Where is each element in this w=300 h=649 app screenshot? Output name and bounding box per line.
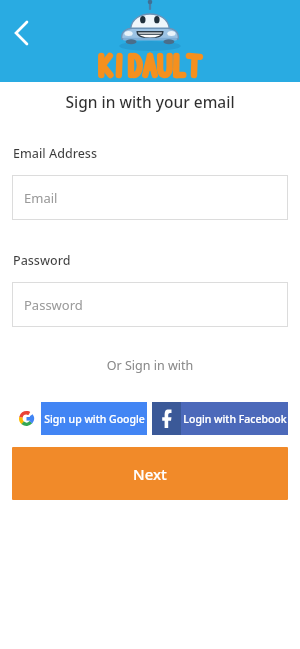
button[interactable]: Email — [12, 175, 288, 220]
staticText: Sign in with your email — [0, 91, 300, 112]
button[interactable]: Back — [4, 16, 38, 50]
staticText: Email Address — [13, 145, 300, 162]
staticText: Email — [24, 189, 58, 207]
button[interactable]: Sign up with Google — [12, 402, 147, 435]
button[interactable]: Password — [12, 282, 288, 327]
staticText: Login with Facebook — [183, 412, 287, 426]
staticText: Next — [133, 464, 167, 484]
button[interactable]: Login with Facebook — [152, 402, 288, 435]
button[interactable]: Next — [12, 447, 288, 500]
staticText: Password — [13, 252, 300, 269]
staticText: Sign up with Google — [44, 412, 145, 426]
staticText: Password — [24, 296, 83, 314]
staticText: Or Sign in with — [0, 357, 300, 374]
